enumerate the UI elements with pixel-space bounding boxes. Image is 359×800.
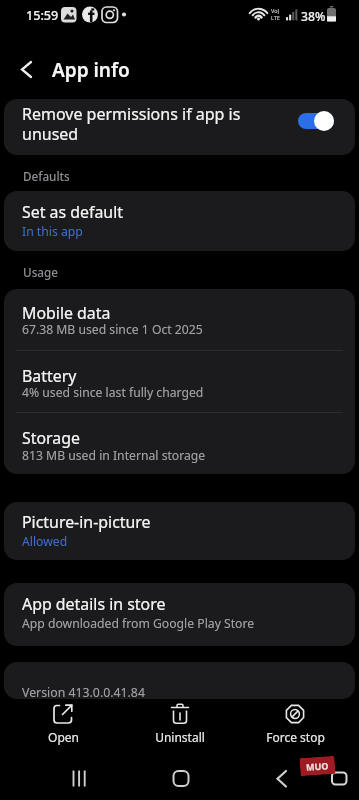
staticText: App info [52,57,130,83]
staticText: Mobile data [22,302,111,324]
staticText: Force stop [266,729,325,745]
staticText: 813 MB used in Internal storage [22,447,206,464]
staticText: Vo) [271,7,280,14]
staticText: Usage [23,264,58,280]
staticText: Open [48,729,79,745]
button[interactable] [298,113,334,129]
staticText: 15:59 [26,7,59,24]
staticText: 4% used since last fully charged [22,384,204,401]
button[interactable] [4,191,355,251]
staticText: Defaults [23,168,70,184]
button[interactable] [4,662,355,699]
button[interactable] [140,698,220,750]
button[interactable] [55,760,105,798]
staticText: Battery [22,365,77,387]
staticText: Set as default [22,201,123,223]
staticText: 38% [301,8,326,25]
staticText: LTE [271,14,280,21]
button[interactable] [4,289,355,474]
staticText: Allowed [22,533,68,550]
staticText: Uninstall [155,729,205,745]
staticText: Version 413.0.0.41.84 [22,684,145,701]
button[interactable] [4,99,355,155]
staticText: App downloaded from Google Play Store [22,615,255,632]
staticText: In this app [22,223,83,240]
staticText: MUO [306,759,329,773]
button[interactable] [4,583,355,646]
staticText: Remove permissions if app is unused [22,103,241,144]
button[interactable] [4,502,355,560]
button[interactable] [23,698,103,750]
button[interactable] [255,698,335,750]
staticText: Storage [22,427,80,449]
staticText: 67.38 MB used since 1 Oct 2025 [22,321,203,338]
staticText: App details in store [22,593,166,615]
button[interactable] [8,55,44,85]
staticText: Picture-in-picture [22,511,151,533]
button[interactable] [156,760,206,798]
button[interactable] [256,760,306,798]
